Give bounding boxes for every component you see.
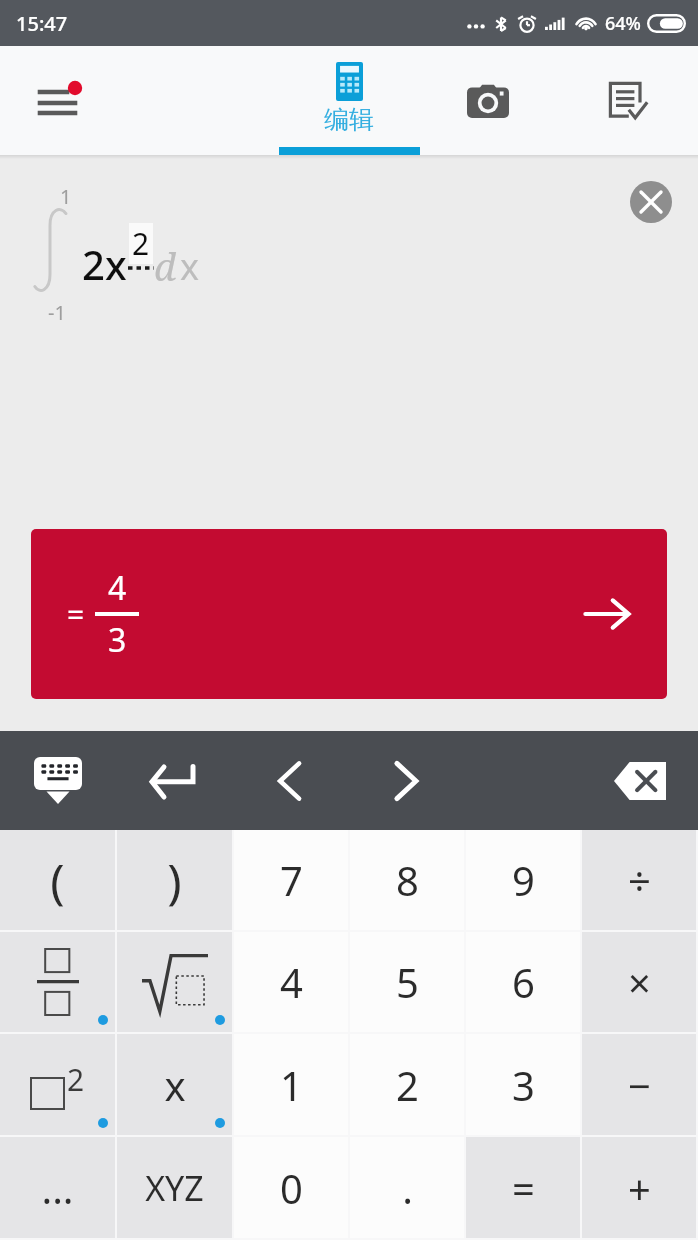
button[interactable]: 8 <box>350 830 464 930</box>
button[interactable]: × <box>582 932 696 1032</box>
button[interactable]: . <box>350 1137 464 1238</box>
staticText: 1 <box>60 183 72 210</box>
button[interactable]: 4 <box>234 932 348 1032</box>
button[interactable]: Hide keyboard <box>0 731 116 830</box>
staticText: x <box>164 1058 186 1112</box>
button[interactable]: ( <box>0 830 115 930</box>
button[interactable]: History <box>558 46 698 155</box>
staticText: d <box>154 240 177 292</box>
staticText: x <box>180 242 200 291</box>
staticText: ÷ <box>628 853 651 907</box>
button[interactable]: 7 <box>234 830 348 930</box>
staticText: -1 <box>48 299 66 326</box>
staticText: 7 <box>280 853 303 907</box>
button[interactable]: Clear <box>630 181 672 223</box>
button[interactable]: Next <box>348 731 464 830</box>
button[interactable]: x <box>117 1034 232 1135</box>
staticText: 15:47 <box>16 10 68 37</box>
staticText: 0 <box>280 1161 303 1215</box>
button[interactable]: + <box>582 1137 696 1238</box>
button[interactable]: = <box>31 529 667 699</box>
button[interactable]: 9 <box>466 830 580 930</box>
staticText: 2 <box>132 223 150 264</box>
button[interactable]: Menu <box>0 46 279 155</box>
button[interactable]: XYZ <box>117 1137 232 1238</box>
staticText: 64% <box>605 11 641 36</box>
button[interactable] <box>117 932 232 1032</box>
staticText: 4 <box>280 955 303 1009</box>
button[interactable]: 编辑 <box>279 46 418 155</box>
button[interactable]: Enter <box>116 731 232 830</box>
button[interactable]: ... <box>0 1137 115 1238</box>
button[interactable]: Camera <box>418 46 558 155</box>
button[interactable]: 3 <box>466 1034 580 1135</box>
staticText: ) <box>167 848 182 913</box>
staticText: . <box>402 1161 413 1215</box>
staticText: 9 <box>512 853 535 907</box>
button[interactable]: 6 <box>466 932 580 1032</box>
staticText: 编辑 <box>324 104 374 135</box>
button[interactable]: − <box>582 1034 696 1135</box>
staticText: = <box>67 594 85 635</box>
staticText: 6 <box>512 955 535 1009</box>
staticText: 5 <box>396 955 419 1009</box>
button[interactable]: 0 <box>234 1137 348 1238</box>
button[interactable]: Backspace <box>582 731 698 830</box>
button[interactable]: = <box>466 1137 580 1238</box>
staticText: 8 <box>396 853 419 907</box>
button[interactable]: 2 <box>350 1034 464 1135</box>
button[interactable]: 1 <box>234 1034 348 1135</box>
button[interactable] <box>0 932 115 1032</box>
staticText: = <box>512 1161 535 1215</box>
staticText: 3 <box>108 618 127 662</box>
button[interactable]: Previous <box>232 731 348 830</box>
staticText: 1 <box>280 1058 303 1112</box>
staticText: 2 <box>396 1058 419 1112</box>
staticText: 2 <box>67 1059 85 1100</box>
staticText: 3 <box>512 1058 535 1112</box>
staticText: ... <box>41 1161 74 1215</box>
staticText: − <box>628 1058 651 1112</box>
staticText: ( <box>50 848 65 913</box>
staticText: 2x <box>82 237 127 291</box>
staticText: 4 <box>108 566 127 610</box>
staticText: XYZ <box>145 1165 204 1211</box>
staticText: + <box>628 1161 651 1215</box>
button[interactable]: ÷ <box>582 830 696 930</box>
button[interactable]: 5 <box>350 932 464 1032</box>
button[interactable]: 2 <box>0 1034 115 1135</box>
staticText: × <box>628 955 651 1009</box>
button[interactable]: ) <box>117 830 232 930</box>
